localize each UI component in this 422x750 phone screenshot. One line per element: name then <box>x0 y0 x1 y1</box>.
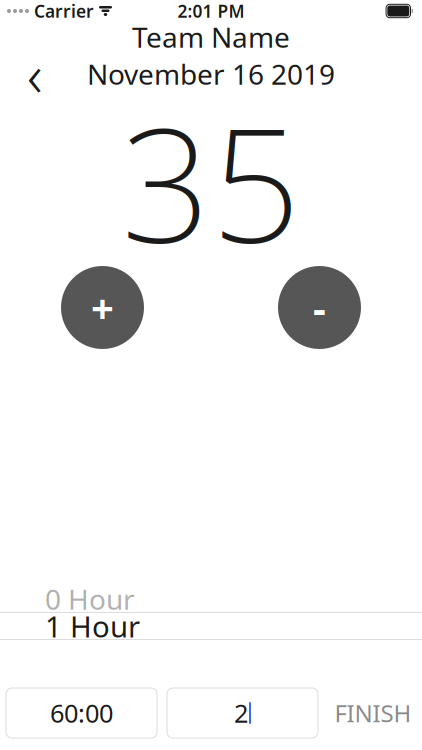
button[interactable]: Decrease <box>278 266 361 349</box>
staticText: 2:01 PM <box>177 0 244 22</box>
staticText: ‹ <box>27 35 43 113</box>
button[interactable]: FINISH <box>330 688 416 738</box>
staticText: Carrier <box>34 0 94 22</box>
staticText: Team Name <box>132 18 290 56</box>
staticText: 1 Hour <box>45 606 140 645</box>
button[interactable]: Increase <box>61 266 144 349</box>
staticText: FINISH <box>334 697 411 729</box>
button[interactable]: 60:00 <box>6 688 157 738</box>
staticText: November 16 2019 <box>87 55 335 93</box>
button[interactable]: 2 <box>167 688 318 738</box>
staticText: - <box>313 281 326 334</box>
staticText: 0 Hour <box>45 580 135 618</box>
staticText: + <box>91 281 114 334</box>
staticText: 60:00 <box>50 696 113 730</box>
staticText: 2 <box>234 696 248 730</box>
staticText: 35 <box>121 76 301 285</box>
button[interactable]: Back <box>11 52 59 96</box>
